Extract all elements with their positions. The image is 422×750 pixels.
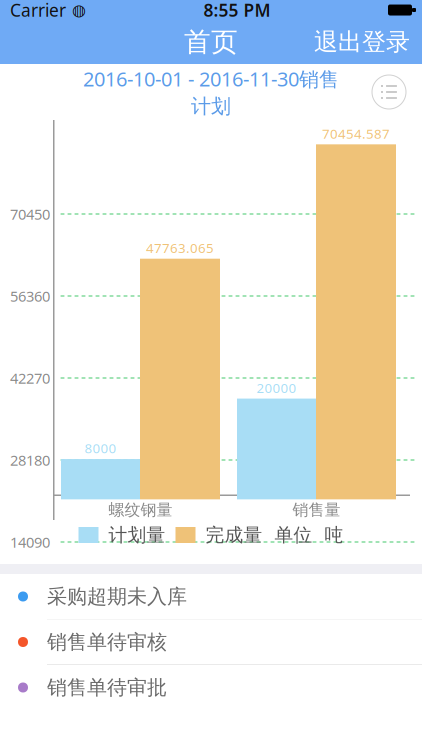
button[interactable]: 退出登录 [302,22,422,62]
staticText: ◍ [72,1,86,19]
staticText: 42270 [10,368,50,388]
staticText: 销售单待审批 [47,675,167,700]
staticText: 退出登录 [314,27,410,57]
staticText: 47763.065 [146,239,214,257]
staticText: 28180 [10,450,50,470]
staticText: 计划量 [108,523,165,546]
button[interactable]: 采购超期未入库 [0,574,422,619]
button[interactable]: 菜单 [372,75,406,109]
staticText: 计划 [191,94,231,119]
staticText: Carrier [10,0,66,21]
staticText: 8:55 PM [203,0,270,21]
staticText: 8000 [84,439,116,457]
staticText: 销售单待审核 [47,630,167,654]
staticText: 20000 [256,379,296,397]
staticText: 14090 [10,532,50,552]
staticText: 70454.587 [322,125,390,142]
button[interactable]: 销售单待审核 [0,619,422,665]
staticText: 螺纹钢量 [108,500,172,520]
staticText: 销售量 [292,500,340,520]
staticText: 56360 [10,286,50,306]
button[interactable]: 销售单待审批 [0,665,422,710]
staticText: 70450 [10,204,50,224]
staticText: 完成量 单位 吨 [205,523,343,546]
staticText: 2016-10-01 - 2016-11-30销售 [83,65,339,92]
staticText: 首页 [184,26,238,58]
staticText: 采购超期未入库 [47,584,187,609]
